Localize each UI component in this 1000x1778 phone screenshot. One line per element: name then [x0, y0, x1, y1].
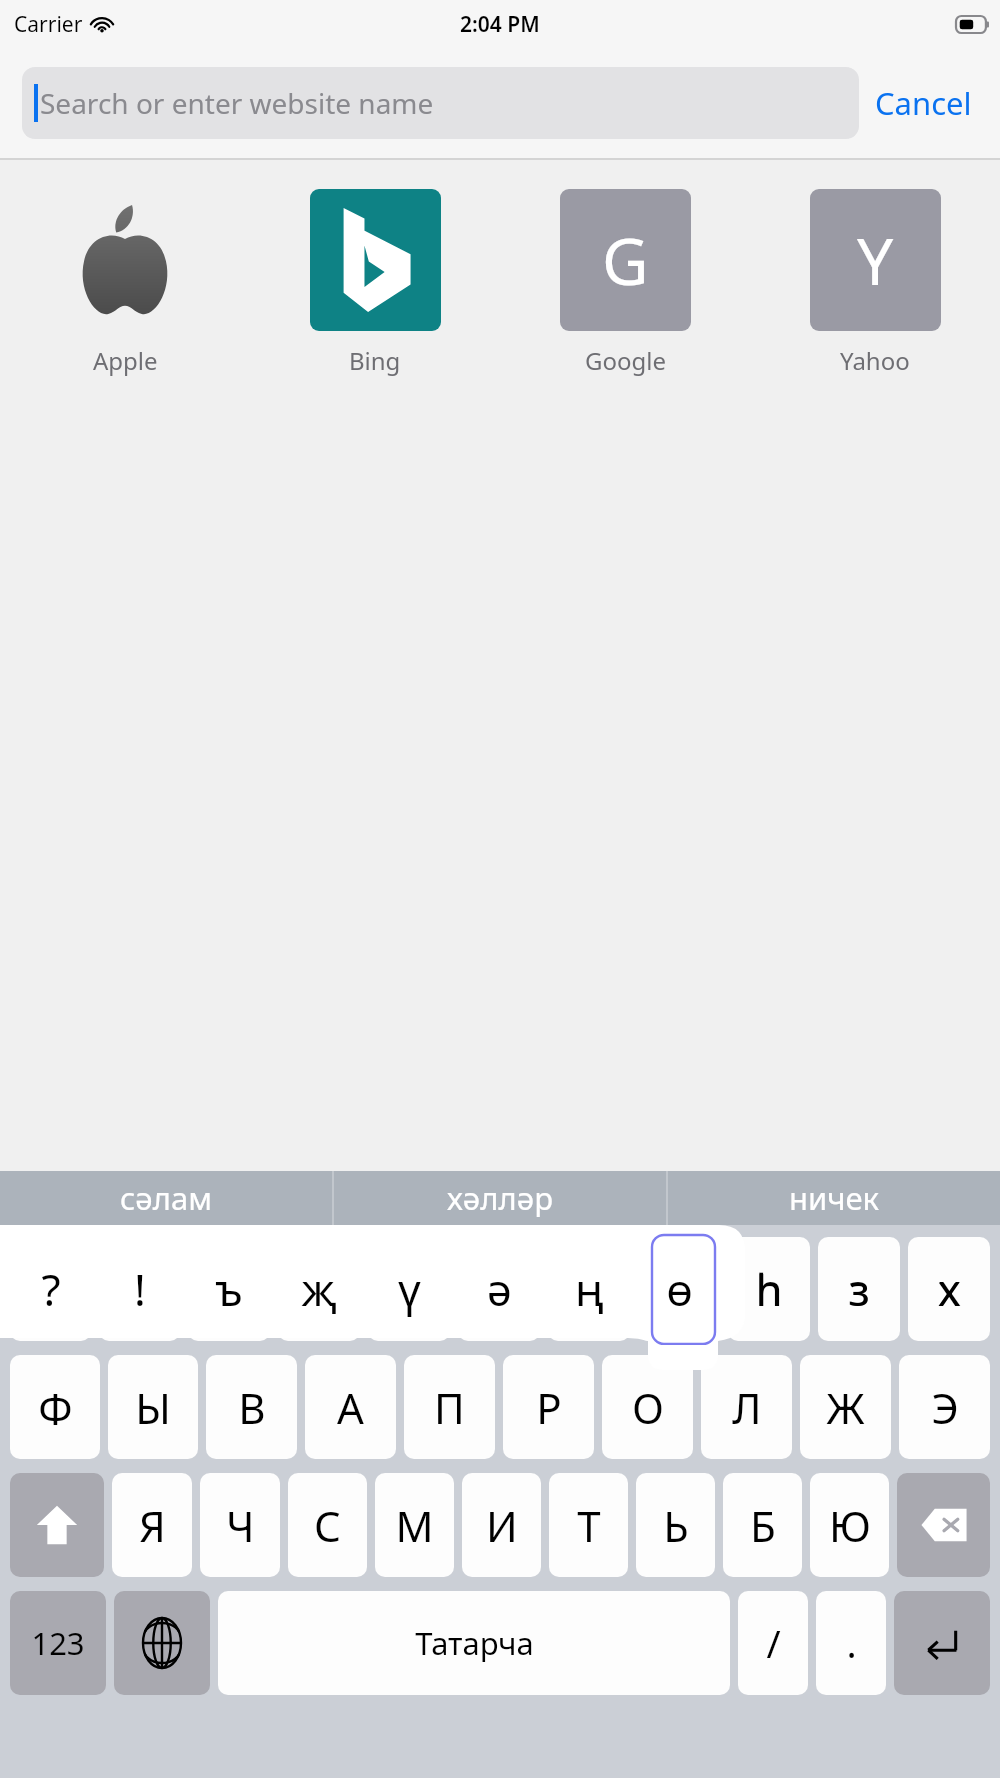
staticText: ү — [398, 1259, 421, 1319]
button[interactable]: ә — [458, 1237, 540, 1341]
staticText: з — [848, 1259, 870, 1319]
staticText: 123 — [31, 1622, 85, 1664]
button[interactable]: ! — [99, 1237, 180, 1341]
staticText: А — [337, 1379, 364, 1436]
button[interactable]: ү — [364, 1237, 454, 1341]
staticText: Ф — [38, 1379, 73, 1436]
button[interactable]: ъ — [184, 1237, 274, 1341]
staticText: сәлам — [120, 1177, 213, 1219]
button[interactable]: Cancel — [859, 70, 988, 136]
button[interactable]: хәлләр — [334, 1171, 666, 1225]
button[interactable]: х — [904, 1237, 994, 1341]
button[interactable]: . — [816, 1591, 886, 1695]
button[interactable]: С — [288, 1473, 367, 1577]
staticText: Ч — [226, 1497, 255, 1554]
button[interactable]: Shift — [10, 1473, 104, 1577]
button[interactable]: Ю — [810, 1473, 889, 1577]
button[interactable]: ничек — [668, 1171, 1000, 1225]
staticText: П — [434, 1379, 465, 1436]
button[interactable]: Я — [112, 1473, 192, 1577]
staticText: Y — [857, 217, 894, 304]
button[interactable]: Э — [899, 1355, 990, 1459]
staticText: ъ — [215, 1259, 243, 1319]
button[interactable]: И — [462, 1473, 541, 1577]
button[interactable]: җ — [278, 1237, 360, 1341]
button[interactable]: Y — [750, 186, 1000, 379]
button[interactable]: ң — [548, 1237, 630, 1341]
button[interactable]: ? — [10, 1237, 91, 1341]
staticText: / — [766, 1617, 781, 1669]
staticText: җ — [301, 1259, 337, 1319]
staticText: С — [314, 1497, 341, 1554]
staticText: Ы — [135, 1379, 171, 1436]
button[interactable]: һ — [724, 1237, 814, 1341]
staticText: хәлләр — [447, 1177, 554, 1219]
staticText: Ь — [663, 1497, 689, 1554]
staticText: ? — [41, 1261, 60, 1318]
button[interactable]: Ь — [636, 1473, 715, 1577]
button[interactable]: G — [500, 186, 750, 379]
staticText: ъ — [216, 1261, 243, 1318]
button[interactable]: ъ — [188, 1237, 270, 1341]
button[interactable]: Ы — [108, 1355, 198, 1459]
button[interactable]: В — [206, 1355, 297, 1459]
button[interactable]: / — [738, 1591, 808, 1695]
button[interactable]: Ч — [200, 1473, 280, 1577]
button[interactable]: Б — [723, 1473, 802, 1577]
staticText: һ — [756, 1261, 782, 1318]
staticText: х — [938, 1259, 961, 1319]
button[interactable]: з — [814, 1237, 904, 1341]
button[interactable]: Ж — [800, 1355, 891, 1459]
button[interactable]: ң — [544, 1237, 634, 1341]
button[interactable]: з — [818, 1237, 900, 1341]
staticText: Ю — [829, 1497, 871, 1554]
button[interactable]: ! — [95, 1237, 184, 1341]
button[interactable]: Search or enter website name — [22, 67, 859, 139]
staticText: Р — [536, 1379, 562, 1436]
staticText: М — [395, 1497, 434, 1554]
button[interactable]: җ — [274, 1237, 364, 1341]
staticText: Google — [585, 344, 666, 377]
button[interactable]: сәлам — [0, 1171, 332, 1225]
staticText: G — [602, 217, 649, 304]
button[interactable]: Татарча — [218, 1591, 730, 1695]
button[interactable]: Р — [503, 1355, 594, 1459]
staticText: О — [632, 1379, 664, 1436]
button[interactable]: Backspace — [897, 1473, 990, 1577]
staticText: Т — [577, 1497, 601, 1554]
staticText: 2:04 PM — [460, 10, 540, 39]
staticText: ! — [134, 1259, 146, 1319]
staticText: ә — [487, 1261, 511, 1318]
button[interactable]: М — [375, 1473, 454, 1577]
staticText: җ — [302, 1261, 336, 1318]
button[interactable]: ө — [634, 1237, 724, 1341]
button[interactable]: Т — [549, 1473, 628, 1577]
button[interactable]: х — [908, 1237, 990, 1341]
button[interactable]: Return — [894, 1591, 990, 1695]
button[interactable]: П — [404, 1355, 495, 1459]
button[interactable]: Bing — [250, 186, 500, 379]
staticText: В — [238, 1379, 266, 1436]
button[interactable]: О — [602, 1355, 693, 1459]
staticText: Cancel — [875, 82, 972, 124]
staticText: Б — [750, 1497, 776, 1554]
staticText: Я — [139, 1497, 166, 1554]
staticText: ң — [575, 1261, 603, 1318]
staticText: Apple — [93, 344, 158, 377]
button[interactable]: ? — [6, 1237, 95, 1341]
button[interactable]: ү — [368, 1237, 450, 1341]
staticText: ә — [487, 1259, 512, 1319]
staticText: Л — [732, 1379, 762, 1436]
button[interactable]: Change keyboard — [114, 1591, 210, 1695]
staticText: ө — [666, 1261, 692, 1318]
button[interactable]: 123 — [10, 1591, 106, 1695]
button[interactable]: Ф — [10, 1355, 100, 1459]
button[interactable]: А — [305, 1355, 396, 1459]
staticText: ң — [575, 1259, 604, 1319]
button[interactable]: Л — [701, 1355, 792, 1459]
button[interactable]: ө — [638, 1237, 720, 1341]
button[interactable]: Apple — [0, 186, 250, 379]
button[interactable]: һ — [728, 1237, 810, 1341]
staticText: Yahoo — [840, 344, 910, 377]
button[interactable]: ә — [454, 1237, 544, 1341]
